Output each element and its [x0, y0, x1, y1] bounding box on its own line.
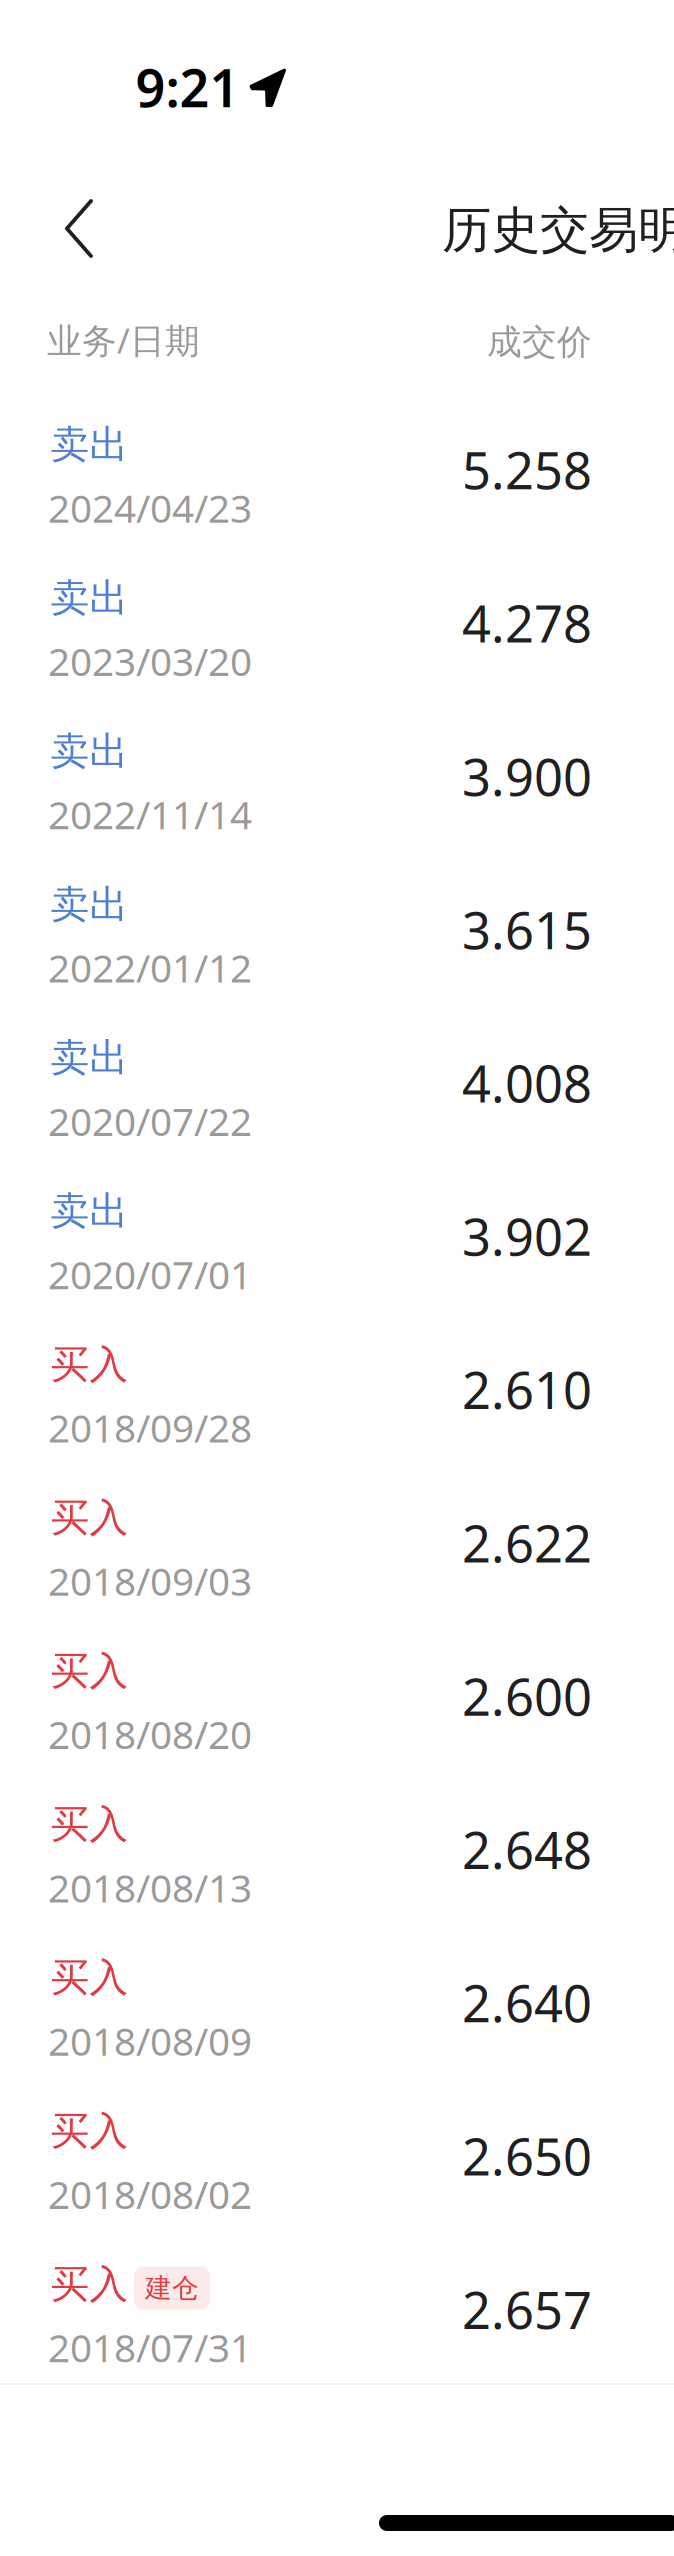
button[interactable]: 买入	[0, 1954, 674, 2107]
staticText: 买入	[50, 1954, 128, 2001]
staticText: 2018/08/20	[48, 1708, 252, 1760]
staticText: 卖出	[50, 881, 128, 928]
button[interactable]: 卖出	[0, 881, 674, 1034]
button[interactable]: 卖出	[0, 728, 674, 881]
staticText: 2.600	[462, 1662, 592, 1730]
staticText: 5.258	[462, 436, 592, 503]
staticText: 建仓	[145, 2272, 199, 2304]
staticText: 2.650	[462, 2122, 592, 2190]
staticText: 2018/09/28	[48, 1402, 252, 1453]
button[interactable]: 卖出	[0, 421, 674, 574]
staticText: 4.008	[462, 1049, 592, 1116]
staticText: 买入	[50, 1341, 128, 1388]
staticText: 3.615	[462, 896, 592, 963]
staticText: 2022/11/14	[48, 789, 252, 840]
button[interactable]: 卖出	[0, 1187, 674, 1341]
staticText: 2018/08/09	[48, 2015, 252, 2066]
button[interactable]: 买入	[0, 2261, 674, 2414]
staticText: 卖出	[50, 574, 128, 622]
staticText: 卖出	[50, 421, 128, 468]
staticText: 业务/日期	[47, 317, 200, 363]
staticText: 2020/07/01	[48, 1248, 252, 1300]
staticText: 买入	[50, 1647, 128, 1695]
staticText: 3.902	[462, 1202, 592, 1270]
button[interactable]: 买入	[0, 1801, 674, 1954]
staticText: 2.640	[462, 1969, 592, 2036]
button[interactable]: 卖出	[0, 1034, 674, 1187]
staticText: 2.657	[462, 2276, 592, 2343]
staticText: 买入	[50, 2261, 128, 2308]
staticText: 2018/08/13	[48, 1862, 252, 1913]
staticText: 成交价	[487, 321, 592, 364]
staticText: 2023/03/20	[48, 635, 252, 687]
staticText: 买入	[50, 1801, 128, 1848]
staticText: 2018/08/02	[48, 2168, 252, 2220]
staticText: 4.278	[462, 589, 592, 657]
staticText: 卖出	[50, 1187, 128, 1235]
staticText: 2018/09/03	[48, 1555, 252, 1606]
staticText: 2018/07/31	[48, 2322, 252, 2373]
staticText: 2.648	[462, 1816, 592, 1883]
staticText: 买入	[50, 1494, 128, 1542]
button[interactable]: 买入	[0, 1341, 674, 1494]
staticText: 2.610	[462, 1356, 592, 1423]
staticText: 2020/07/22	[48, 1095, 252, 1146]
button[interactable]: 卖出	[0, 574, 674, 728]
staticText: 卖出	[50, 1034, 128, 1082]
staticText: 2022/01/12	[48, 942, 252, 993]
staticText: 买入	[50, 2107, 128, 2155]
staticText: 卖出	[50, 728, 128, 775]
staticText: 3.900	[462, 743, 592, 810]
button[interactable]: 返回	[31, 181, 127, 277]
staticText: 历史交易明细	[442, 200, 674, 261]
staticText: 9:21	[136, 52, 240, 122]
button[interactable]: 买入	[0, 2107, 674, 2261]
staticText: 2024/04/23	[48, 482, 252, 533]
button[interactable]: 买入	[0, 1647, 674, 1801]
button[interactable]: 买入	[0, 1494, 674, 1647]
staticText: 2.622	[462, 1509, 592, 1576]
